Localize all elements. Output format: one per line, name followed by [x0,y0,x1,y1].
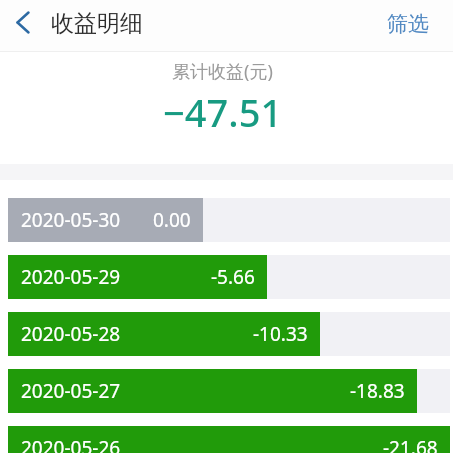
button[interactable]: Back [0,0,44,52]
staticText: 0.00 [153,207,191,233]
staticText: 收益明细 [51,9,143,38]
button[interactable]: 2020-05-30 [8,198,450,242]
staticText: 筛选 [387,11,429,37]
staticText: 2020-05-27 [21,378,121,404]
staticText: 2020-05-28 [21,321,121,347]
staticText: 2020-05-26 [21,435,121,453]
staticText: -18.83 [350,378,405,404]
staticText: 累计收益(元) [172,59,273,84]
staticText: -10.33 [253,321,308,347]
staticText: 2020-05-30 [21,207,121,233]
staticText: -5.66 [211,264,255,290]
button[interactable]: 2020-05-29 [8,255,450,299]
button[interactable]: 2020-05-26 [8,426,450,453]
staticText: −47.51 [163,86,283,138]
button[interactable]: 筛选 [373,0,453,52]
button[interactable]: 2020-05-27 [8,369,450,413]
button[interactable]: 2020-05-28 [8,312,450,356]
staticText: 2020-05-29 [21,264,121,290]
staticText: -21.68 [383,435,438,453]
